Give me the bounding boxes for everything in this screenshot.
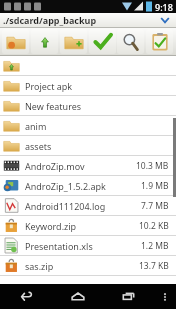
staticText: ./sdcard/app_backup [3, 14, 97, 26]
staticText: New features [25, 100, 176, 112]
button[interactable]: AndroZip_1.5.2.apk [0, 176, 176, 195]
staticText: AndroZip_1.5.2.apk [25, 180, 141, 192]
staticText: Android111204.log [25, 200, 141, 212]
button[interactable]: New folder [60, 29, 87, 54]
button[interactable]: anim [0, 116, 176, 135]
button[interactable]: AndroZip.mov [0, 156, 176, 175]
staticText: 1.2 MB [141, 240, 169, 252]
staticText: sas.zip [25, 260, 139, 272]
button[interactable]: Keyword.zip [0, 216, 176, 235]
button[interactable]: assets [0, 136, 176, 155]
button[interactable]: More options [154, 284, 176, 309]
staticText: 10.3 MB [136, 160, 169, 172]
staticText: AndroZip.mov [25, 160, 136, 172]
button[interactable]: ./sdcard/app_backup [0, 13, 176, 27]
button[interactable]: Back [0, 284, 52, 309]
button[interactable] [0, 56, 176, 75]
button[interactable]: Project apk [0, 76, 176, 95]
button[interactable]: sas.zip [0, 256, 176, 275]
staticText: Keyword.zip [25, 220, 139, 232]
button[interactable]: Home [52, 284, 103, 309]
staticText: anim [25, 120, 176, 132]
staticText: 10.2 KB [139, 220, 169, 232]
button[interactable]: Presentation.xls [0, 236, 176, 255]
button[interactable]: Recent apps [103, 284, 154, 309]
button[interactable]: Search [117, 29, 144, 54]
button[interactable]: Android111204.log [0, 196, 176, 215]
button[interactable]: New features [0, 96, 176, 115]
button[interactable]: Tasks [146, 29, 173, 54]
staticText: 1.9 MB [141, 180, 169, 192]
staticText: assets [25, 140, 176, 152]
staticText: Presentation.xls [25, 240, 141, 252]
button[interactable]: Home folder [2, 29, 29, 54]
button[interactable]: Up one level [31, 29, 58, 54]
staticText: 7.7 MB [141, 200, 169, 212]
button[interactable]: Select all [89, 29, 116, 54]
staticText: Project apk [25, 80, 176, 92]
staticText: 9:18 [155, 1, 173, 13]
staticText: 13.7 KB [139, 260, 169, 272]
